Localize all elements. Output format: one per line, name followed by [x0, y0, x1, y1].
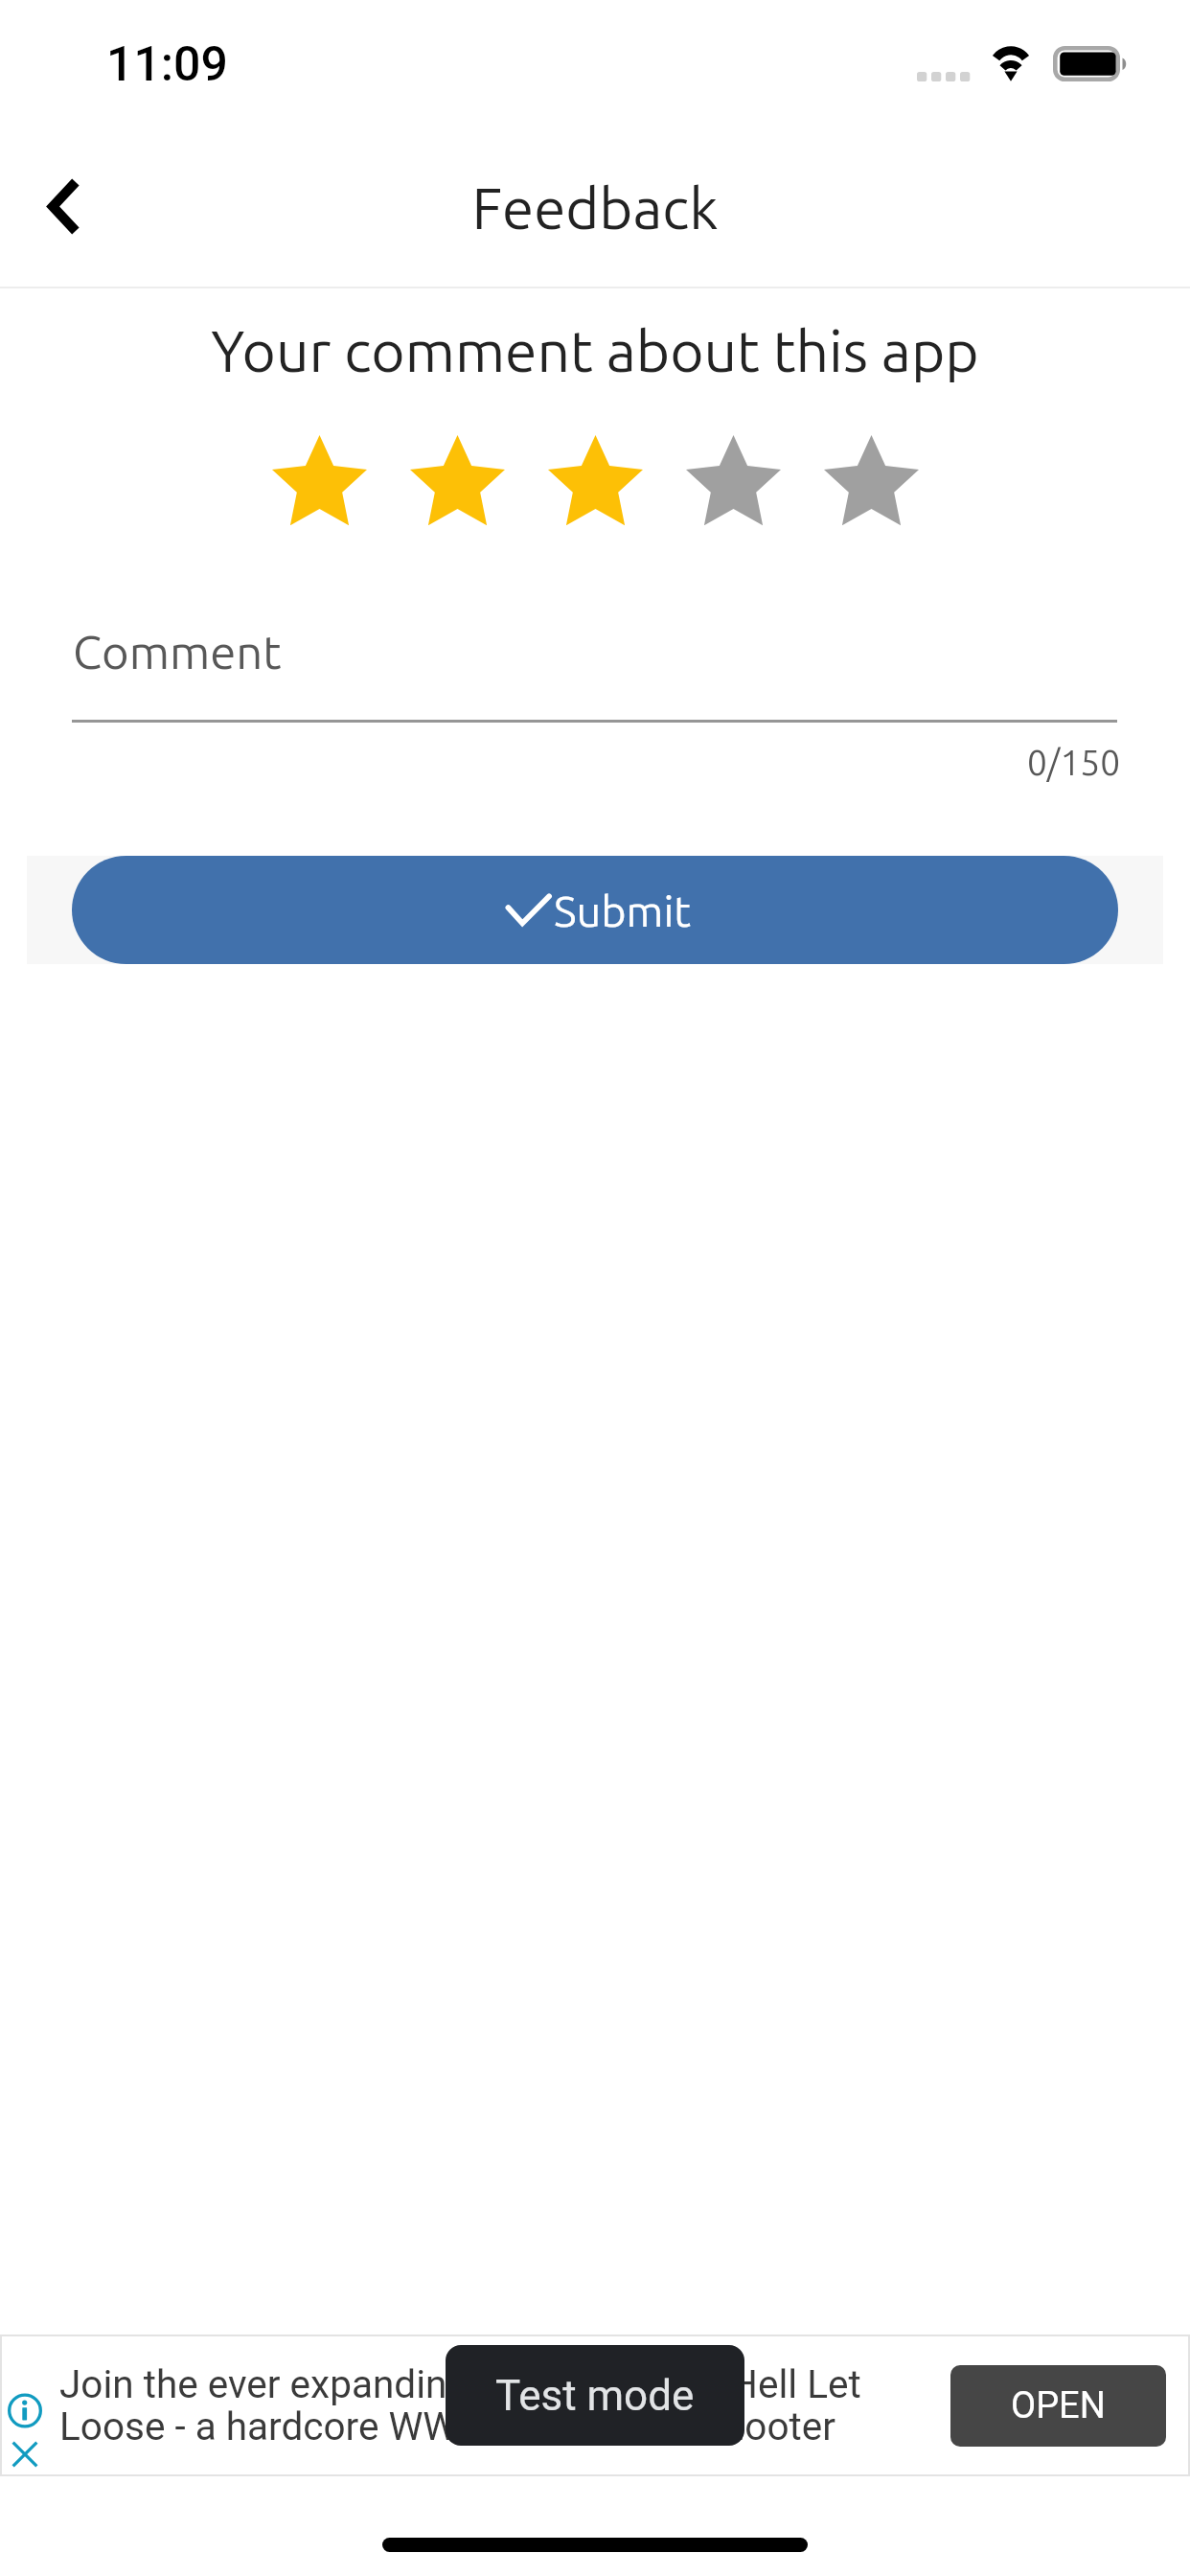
- button[interactable]: Rate 2 stars: [388, 412, 526, 550]
- button[interactable]: Rate 5 stars: [802, 412, 940, 550]
- staticText: Test mode: [495, 2371, 695, 2421]
- staticText: Feedback: [0, 175, 1190, 240]
- staticText: 0/150: [1027, 743, 1121, 782]
- button[interactable]: Rate 3 stars: [526, 412, 664, 550]
- staticText: Comment: [73, 625, 282, 678]
- staticText: Your comment about this app: [0, 318, 1190, 383]
- staticText: Loose - a hardcore WWII tactical FPS sho…: [59, 2403, 835, 2449]
- staticText: Join the ever expanding player base of H…: [59, 2361, 861, 2406]
- button[interactable]: Rate 4 stars: [664, 412, 802, 550]
- staticText: OPEN: [1011, 2384, 1106, 2427]
- button[interactable]: Back: [11, 151, 118, 259]
- button[interactable]: Rate 1 stars: [250, 412, 388, 550]
- button[interactable]: OPEN: [950, 2365, 1166, 2447]
- button[interactable]: Submit: [72, 856, 1118, 964]
- staticText: 11:09: [106, 36, 228, 93]
- button[interactable]: Ad information: [8, 2393, 42, 2428]
- staticText: Submit: [554, 886, 692, 934]
- button[interactable]: Comment: [72, 594, 1118, 723]
- button[interactable]: Close ad: [11, 2441, 38, 2468]
